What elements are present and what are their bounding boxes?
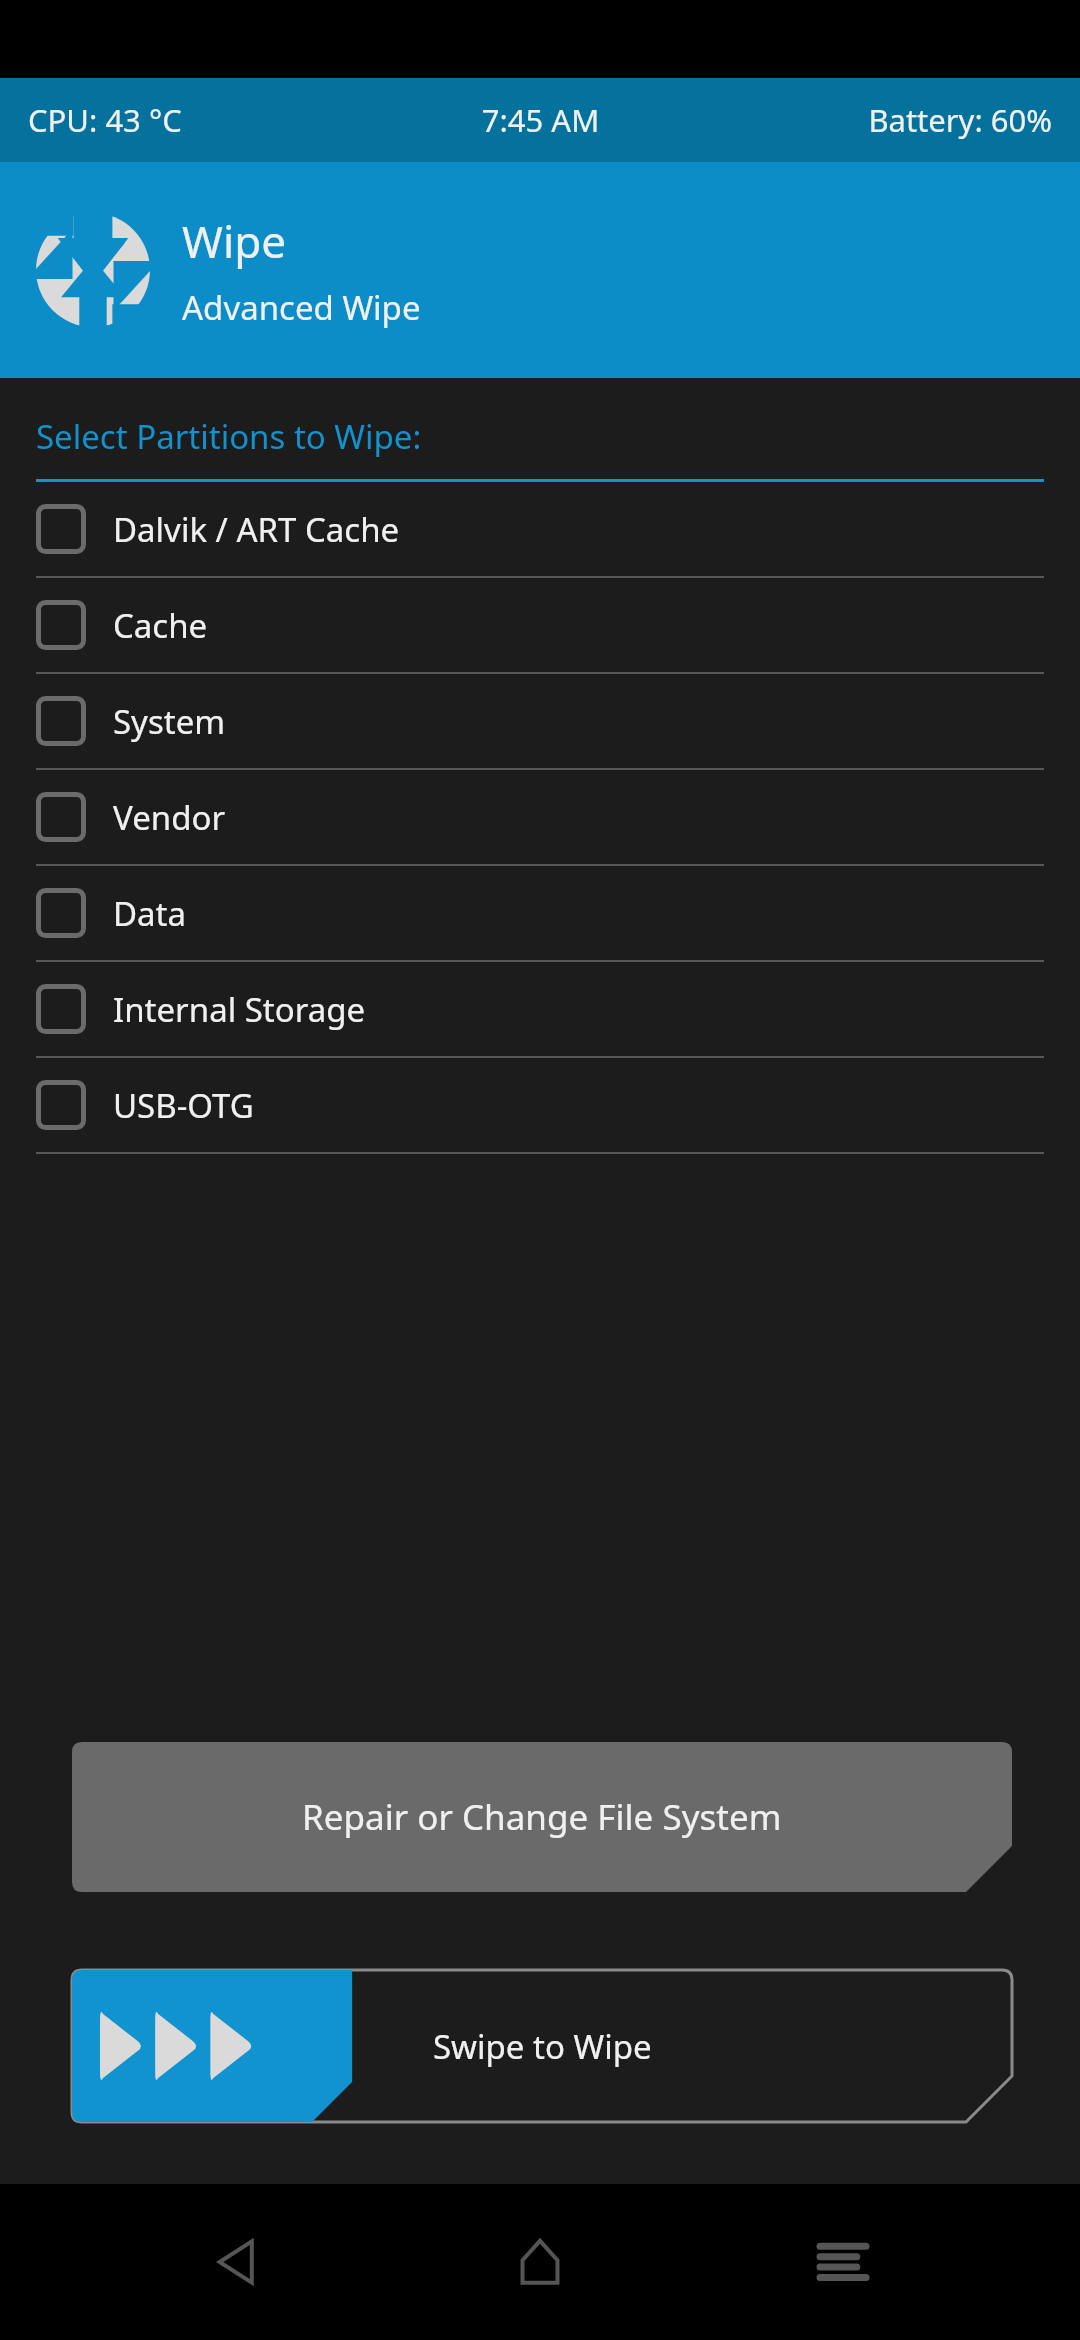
staticText: USB-OTG	[113, 1083, 254, 1128]
staticText: Internal Storage	[113, 987, 366, 1032]
button[interactable]: Swipe to Wipe	[72, 1970, 1012, 2122]
button[interactable]: Back	[173, 2197, 303, 2327]
staticText: Cache	[113, 603, 208, 648]
button[interactable]: Repair or Change File System	[72, 1742, 1012, 1892]
staticText: Vendor	[113, 795, 226, 840]
button[interactable]: Cache	[0, 578, 1080, 674]
staticText: System	[113, 699, 226, 744]
staticText: CPU: 43 °C	[28, 99, 370, 141]
staticText: Swipe to Wipe	[433, 2024, 652, 2069]
staticText: Wipe	[182, 211, 287, 271]
staticText: Advanced Wipe	[182, 285, 421, 330]
button[interactable]: Dalvik / ART Cache	[0, 482, 1080, 578]
staticText: Select Partitions to Wipe:	[36, 414, 422, 459]
button[interactable]: Home	[475, 2197, 605, 2327]
button[interactable]: Menu	[778, 2197, 908, 2327]
button[interactable]: USB-OTG	[0, 1058, 1080, 1154]
button[interactable]: Vendor	[0, 770, 1080, 866]
staticText: Dalvik / ART Cache	[113, 507, 400, 552]
staticText: Data	[113, 891, 187, 936]
staticText: 7:45 AM	[370, 99, 711, 141]
button[interactable]: Data	[0, 866, 1080, 962]
button[interactable]: Internal Storage	[0, 962, 1080, 1058]
staticText: Repair or Change File System	[302, 1793, 782, 1841]
button[interactable]: System	[0, 674, 1080, 770]
staticText: Battery: 60%	[711, 99, 1052, 141]
